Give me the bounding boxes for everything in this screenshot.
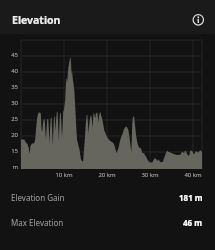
staticText: 181 m <box>179 192 203 203</box>
staticText: 15 <box>0 147 18 155</box>
staticText: 20 km <box>91 171 123 179</box>
button[interactable]: Info <box>186 8 209 31</box>
button[interactable]: Elevation Gain <box>0 185 215 210</box>
staticText: 35 <box>0 83 18 91</box>
staticText: 40 <box>0 67 18 75</box>
staticText: Max Elevation <box>11 217 64 228</box>
staticText: 40 km <box>177 171 209 179</box>
staticText: 10 km <box>48 171 80 179</box>
staticText: 30 km <box>134 171 166 179</box>
staticText: Elevation Gain <box>11 192 65 203</box>
staticText: 46 m <box>183 217 203 228</box>
button[interactable]: Max Elevation <box>0 210 215 235</box>
staticText: Elevation <box>12 13 61 27</box>
staticText: 45 <box>0 51 18 59</box>
staticText: m <box>0 163 18 171</box>
staticText: 30 <box>0 99 18 107</box>
staticText: 25 <box>0 115 18 123</box>
staticText: 20 <box>0 131 18 139</box>
